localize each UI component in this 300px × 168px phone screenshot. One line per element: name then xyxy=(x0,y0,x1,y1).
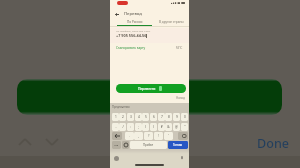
staticText: ' xyxy=(168,134,169,138)
button[interactable]: 8 xyxy=(165,113,172,121)
staticText: / xyxy=(122,125,124,129)
button[interactable]: Emoji xyxy=(114,156,119,161)
staticText: Done xyxy=(257,135,290,152)
button[interactable]: @ xyxy=(173,123,180,131)
staticText: МПС xyxy=(176,46,183,50)
button[interactable]: Готово xyxy=(168,141,188,149)
button[interactable]: - xyxy=(112,123,119,131)
button[interactable]: Перевести xyxy=(116,84,186,93)
button[interactable]: , xyxy=(134,132,143,140)
button[interactable]: 5 xyxy=(142,113,149,121)
staticText: Перевести xyxy=(138,86,156,91)
button[interactable]: " xyxy=(181,123,188,131)
staticText: Пробел xyxy=(143,143,154,147)
button[interactable]: Пробел xyxy=(130,141,167,149)
button[interactable]: 4 xyxy=(135,113,142,121)
staticText: Сканировать карту xyxy=(116,46,146,50)
staticText: Перевод xyxy=(124,11,142,17)
staticText: ; xyxy=(138,125,139,129)
button[interactable]: / xyxy=(119,123,126,131)
staticText: ( xyxy=(145,125,146,129)
button[interactable]: По России xyxy=(117,18,152,25)
staticText: " xyxy=(184,125,186,129)
button[interactable]: ( xyxy=(142,123,149,131)
staticText: - xyxy=(115,125,117,129)
staticText: 7 xyxy=(161,115,163,119)
button[interactable]: : xyxy=(127,123,134,131)
button[interactable]: Backspace xyxy=(178,132,188,140)
button[interactable]: 0 xyxy=(181,113,188,121)
staticText: : xyxy=(130,125,131,129)
staticText: По телефону, карте или счёту xyxy=(116,29,151,32)
staticText: По России xyxy=(127,20,143,24)
button[interactable]: 6 xyxy=(150,113,157,121)
button[interactable]: Done xyxy=(251,132,295,153)
staticText: Предложения xyxy=(112,105,130,109)
staticText: & xyxy=(167,125,170,129)
button[interactable]: Back xyxy=(112,10,121,18)
button[interactable]: Switch language xyxy=(122,141,129,149)
button[interactable]: ' xyxy=(164,132,173,140)
staticText: @ xyxy=(175,125,178,129)
staticText: Готово xyxy=(173,143,183,147)
button[interactable]: ) xyxy=(150,123,157,131)
staticText: 1 xyxy=(115,115,117,119)
button[interactable]: & xyxy=(165,123,172,131)
staticText: . xyxy=(129,134,130,138)
staticText: 8 xyxy=(168,115,170,119)
staticText: 4 xyxy=(138,115,140,119)
button[interactable]: В другие страны xyxy=(153,18,189,25)
button[interactable]: 3 xyxy=(127,113,134,121)
button[interactable]: More symbols xyxy=(112,132,122,140)
staticText: +7 905 556-44-56 xyxy=(116,33,147,38)
staticText: В другие страны xyxy=(159,20,184,24)
button[interactable]: ! xyxy=(154,132,163,140)
staticText: 3 xyxy=(130,115,132,119)
staticText: АБВ xyxy=(114,144,119,147)
staticText: 9 xyxy=(176,115,178,119)
button[interactable]: 9 xyxy=(173,113,180,121)
button[interactable]: ; xyxy=(135,123,142,131)
staticText: 6 xyxy=(153,115,155,119)
button[interactable]: . xyxy=(125,132,134,140)
staticText: ! xyxy=(158,134,159,138)
staticText: ₽ xyxy=(161,125,163,129)
staticText: ? xyxy=(148,134,150,138)
staticText: 5 xyxy=(145,115,147,119)
button[interactable]: Сканировать карту xyxy=(113,44,186,52)
staticText: ) xyxy=(153,125,154,129)
button[interactable]: 7 xyxy=(158,113,165,121)
staticText: 2 xyxy=(122,115,124,119)
button[interactable]: ? xyxy=(144,132,153,140)
button[interactable]: Назад xyxy=(176,96,185,100)
button[interactable]: ₽ xyxy=(158,123,165,131)
button[interactable]: Dictation xyxy=(180,156,184,161)
button[interactable]: 1 xyxy=(112,113,119,121)
button[interactable]: АБВ xyxy=(112,141,121,149)
button[interactable]: 2 xyxy=(119,113,126,121)
staticText: 0 xyxy=(184,115,186,119)
staticText: , xyxy=(138,134,139,138)
